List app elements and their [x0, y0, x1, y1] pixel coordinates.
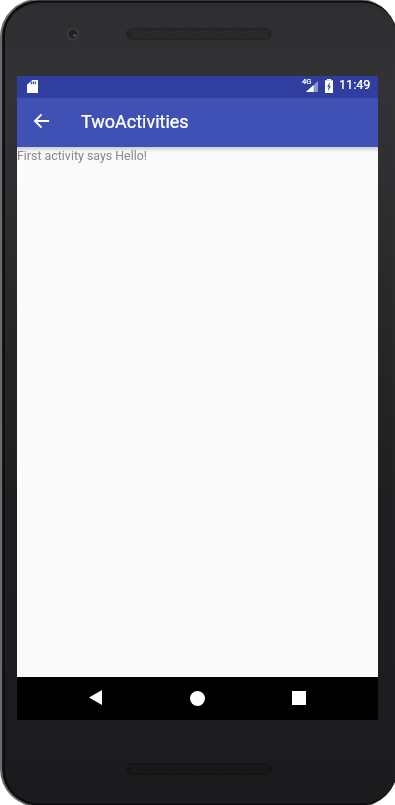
button[interactable]: Recent apps: [286, 685, 312, 711]
button[interactable]: Back: [82, 684, 108, 710]
staticText: 11:49: [339, 77, 371, 92]
button[interactable]: Home: [184, 685, 210, 711]
staticText: TwoActivities: [81, 111, 189, 132]
button[interactable]: Navigate up: [28, 109, 52, 133]
staticText: 4G: [302, 77, 312, 86]
staticText: First activity says Hello!: [17, 148, 147, 163]
